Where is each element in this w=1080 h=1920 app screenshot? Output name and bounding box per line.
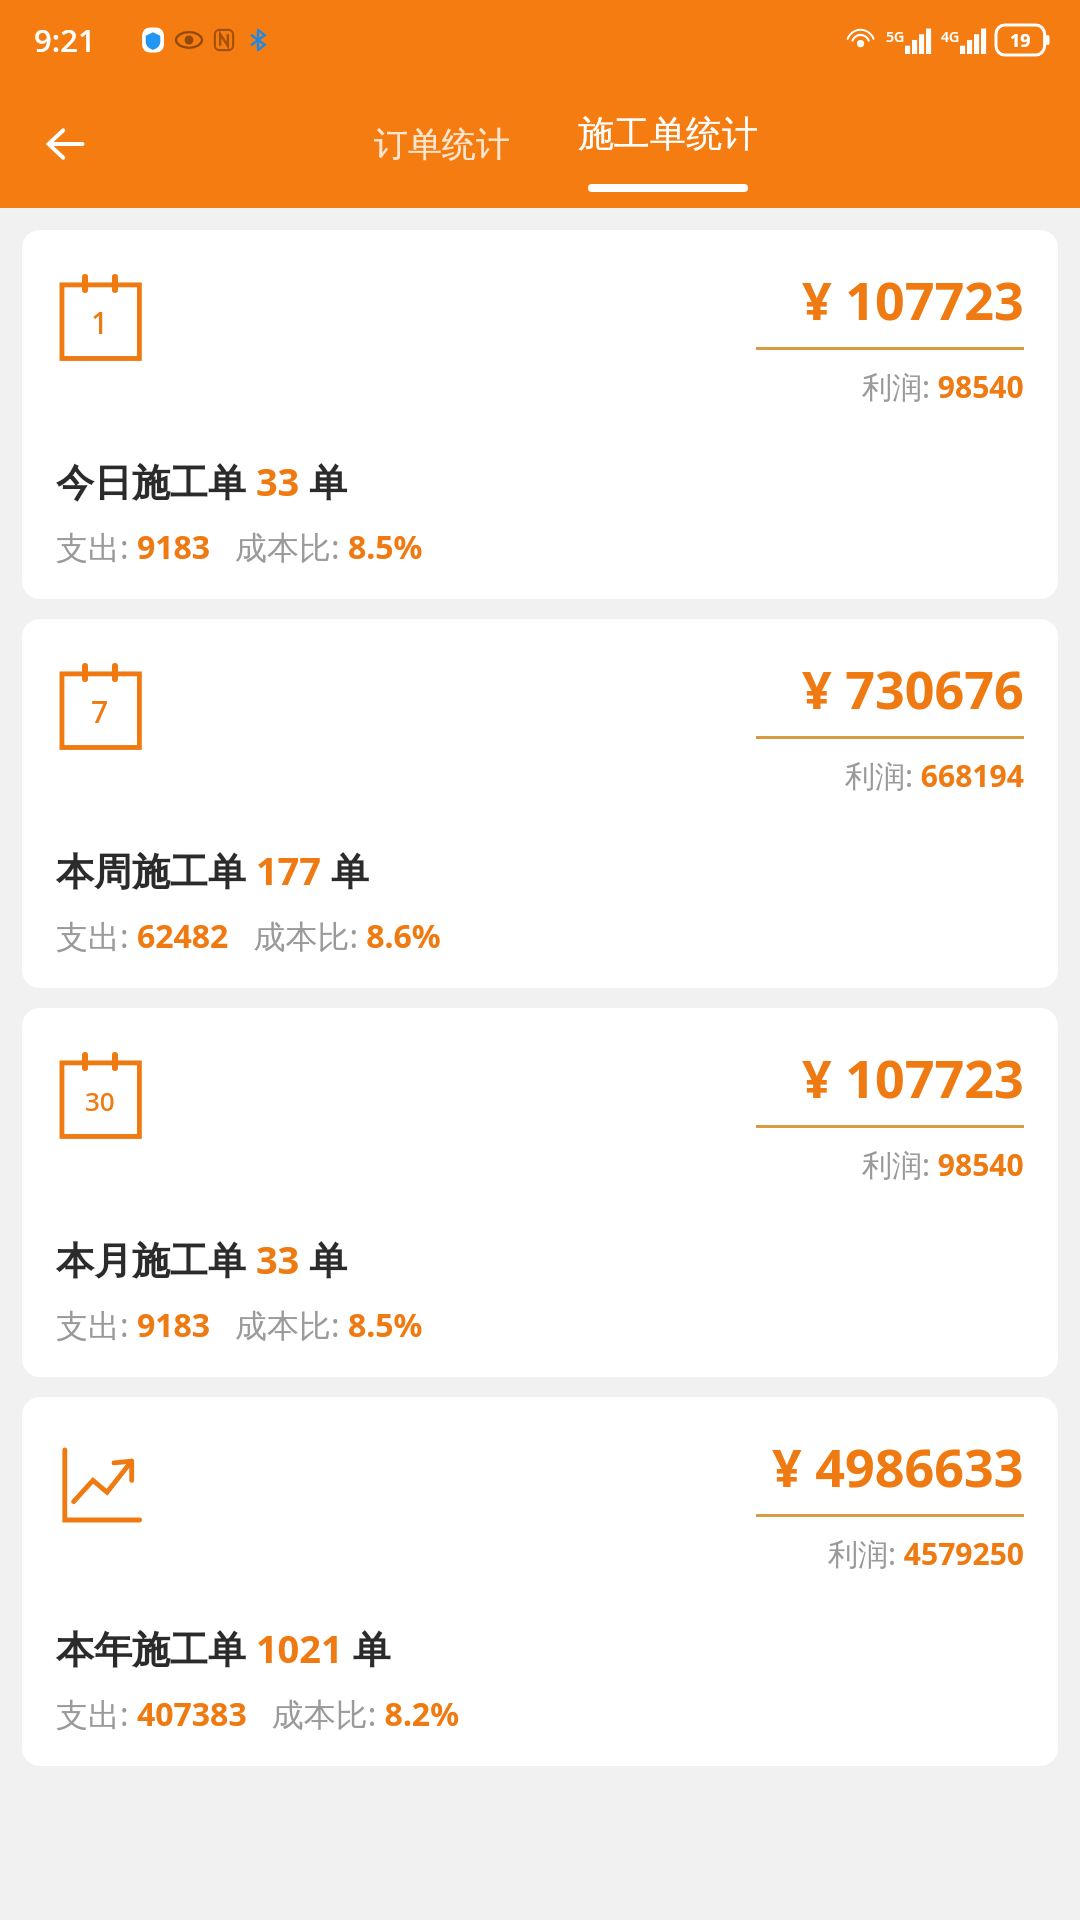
staticText: 本月施工单 33 单 <box>56 1233 348 1285</box>
staticText: 订单统计 <box>374 123 510 166</box>
staticText: 19 <box>1010 28 1031 53</box>
staticText: ¥ 730676 <box>802 653 1024 724</box>
staticText: 支出: 9183 成本比: 8.5% <box>56 525 423 569</box>
staticText: 支出: 407383 成本比: 8.2% <box>56 1692 460 1736</box>
staticText: 1 <box>91 302 109 343</box>
staticText: 利润: 4579250 <box>828 1533 1024 1574</box>
staticText: 支出: 62482 成本比: 8.6% <box>56 914 441 958</box>
button[interactable]: 7 <box>22 619 1058 988</box>
button[interactable]: ¥ 4986633 <box>22 1397 1058 1766</box>
button[interactable]: 施工单统计 <box>566 97 770 192</box>
staticText: ¥ 4986633 <box>772 1431 1024 1502</box>
staticText: 本年施工单 1021 单 <box>56 1622 391 1674</box>
button[interactable]: 30 <box>22 1008 1058 1377</box>
staticText: ¥ 107723 <box>802 1042 1024 1113</box>
staticText: 今日施工单 33 单 <box>56 455 348 507</box>
button[interactable]: 1 <box>22 230 1058 599</box>
staticText: 利润: 668194 <box>845 755 1024 796</box>
staticText: 利润: 98540 <box>862 1144 1024 1185</box>
staticText: ¥ 107723 <box>802 264 1024 335</box>
staticText: 利润: 98540 <box>862 366 1024 407</box>
button[interactable]: 订单统计 <box>354 109 530 180</box>
staticText: 5G <box>886 27 905 46</box>
staticText: 30 <box>85 1083 115 1118</box>
staticText: 7 <box>91 691 109 732</box>
staticText: 4G <box>941 27 960 46</box>
staticText: 9:21 <box>34 19 96 61</box>
button[interactable]: Back <box>24 102 108 186</box>
staticText: 施工单统计 <box>578 111 758 156</box>
staticText: 支出: 9183 成本比: 8.5% <box>56 1303 423 1347</box>
staticText: 本周施工单 177 单 <box>56 844 369 896</box>
